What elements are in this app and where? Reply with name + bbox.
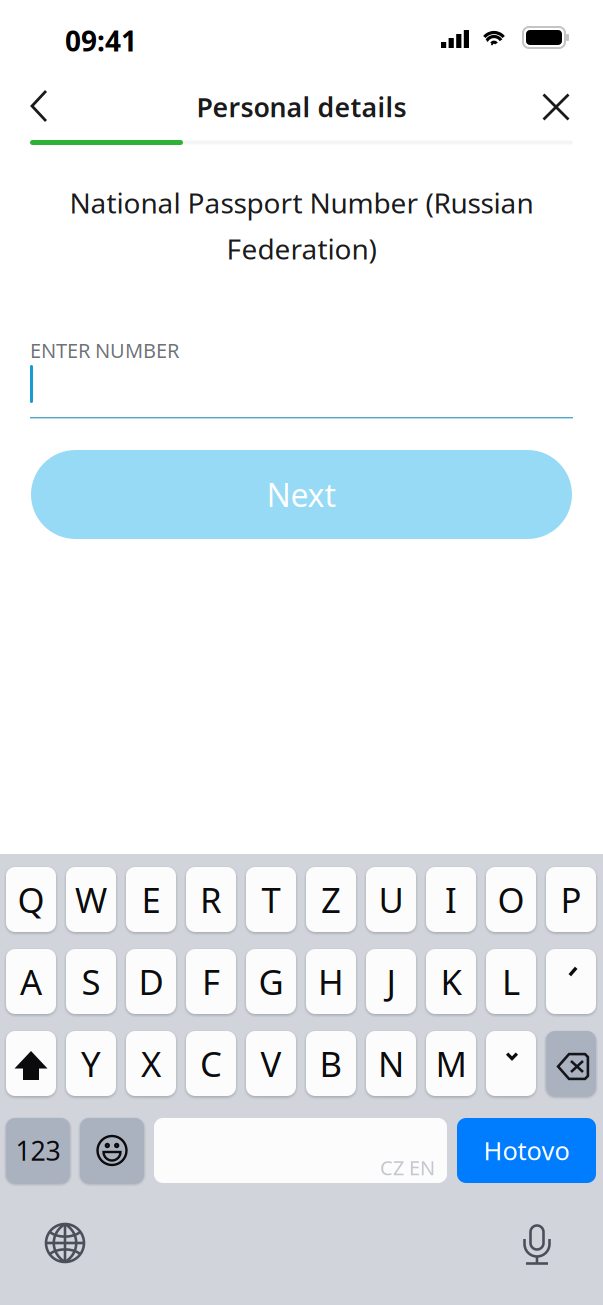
button[interactable]: L xyxy=(486,949,536,1014)
button[interactable]: Delete xyxy=(546,1031,596,1096)
button[interactable]: Numbers xyxy=(6,1118,70,1183)
button[interactable]: Shift xyxy=(6,1031,56,1096)
button[interactable]: H xyxy=(306,949,356,1014)
button[interactable]: O xyxy=(486,867,536,932)
staticText: C xyxy=(200,1040,222,1086)
staticText: D xyxy=(138,958,163,1004)
staticText: Next xyxy=(266,473,336,516)
staticText: A xyxy=(20,958,42,1004)
staticText: L xyxy=(502,958,520,1004)
button[interactable]: Acute accent xyxy=(546,949,596,1014)
button[interactable]: G xyxy=(246,949,296,1014)
button[interactable]: Back xyxy=(4,75,74,137)
staticText: M xyxy=(435,1040,466,1086)
button[interactable]: F xyxy=(186,949,236,1014)
staticText: X xyxy=(141,1040,161,1086)
button[interactable]: B xyxy=(306,1031,356,1096)
staticText: I xyxy=(445,876,457,922)
staticText: Federation) xyxy=(226,230,376,267)
button[interactable]: Next keyboard xyxy=(45,1223,85,1263)
button[interactable]: U xyxy=(366,867,416,932)
staticText: T xyxy=(261,876,280,922)
staticText: H xyxy=(318,958,344,1004)
staticText: Q xyxy=(17,876,44,922)
staticText: V xyxy=(260,1040,281,1086)
staticText: Z xyxy=(321,876,341,922)
button[interactable]: Q xyxy=(6,867,56,932)
button[interactable]: P xyxy=(546,867,596,932)
button[interactable]: Dictation xyxy=(521,1222,553,1265)
staticText: 123 xyxy=(15,1133,60,1168)
staticText: J xyxy=(386,958,395,1004)
staticText: CZ EN xyxy=(380,1154,435,1181)
button[interactable]: E xyxy=(126,867,176,932)
staticText: O xyxy=(497,876,524,922)
button[interactable]: Y xyxy=(66,1031,116,1096)
staticText: Y xyxy=(81,1040,101,1086)
button[interactable]: Z xyxy=(306,867,356,932)
staticText: Hotovo xyxy=(483,1134,569,1167)
staticText: G xyxy=(258,958,283,1004)
button[interactable]: S xyxy=(66,949,116,1014)
button[interactable]: V xyxy=(246,1031,296,1096)
staticText: K xyxy=(440,958,461,1004)
button[interactable]: N xyxy=(366,1031,416,1096)
button[interactable]: C xyxy=(186,1031,236,1096)
staticText: ENTER NUMBER xyxy=(30,337,179,364)
button[interactable]: W xyxy=(66,867,116,932)
button[interactable]: R xyxy=(186,867,236,932)
staticText: N xyxy=(378,1040,404,1086)
staticText: B xyxy=(319,1040,342,1086)
button[interactable]: I xyxy=(426,867,476,932)
staticText: E xyxy=(141,876,160,922)
staticText: U xyxy=(378,876,403,922)
button[interactable]: A xyxy=(6,949,56,1014)
staticText: National Passport Number (Russian xyxy=(69,184,533,221)
button[interactable]: Space xyxy=(154,1118,447,1183)
staticText: 09:41 xyxy=(65,22,137,59)
button[interactable]: K xyxy=(426,949,476,1014)
staticText: F xyxy=(202,958,220,1004)
button[interactable]: Close xyxy=(524,76,588,138)
staticText: S xyxy=(81,958,100,1004)
button[interactable]: M xyxy=(426,1031,476,1096)
staticText: P xyxy=(560,876,581,922)
button[interactable]: Caron accent xyxy=(486,1031,536,1096)
button[interactable]: X xyxy=(126,1031,176,1096)
button[interactable]: D xyxy=(126,949,176,1014)
button[interactable]: Emoji xyxy=(80,1118,144,1183)
button[interactable]: Hotovo xyxy=(457,1118,596,1183)
staticText: W xyxy=(75,876,107,922)
staticText: Personal details xyxy=(196,89,406,125)
button[interactable]: J xyxy=(366,949,416,1014)
staticText: R xyxy=(200,876,222,922)
button[interactable]: T xyxy=(246,867,296,932)
button[interactable]: Next xyxy=(31,450,572,539)
